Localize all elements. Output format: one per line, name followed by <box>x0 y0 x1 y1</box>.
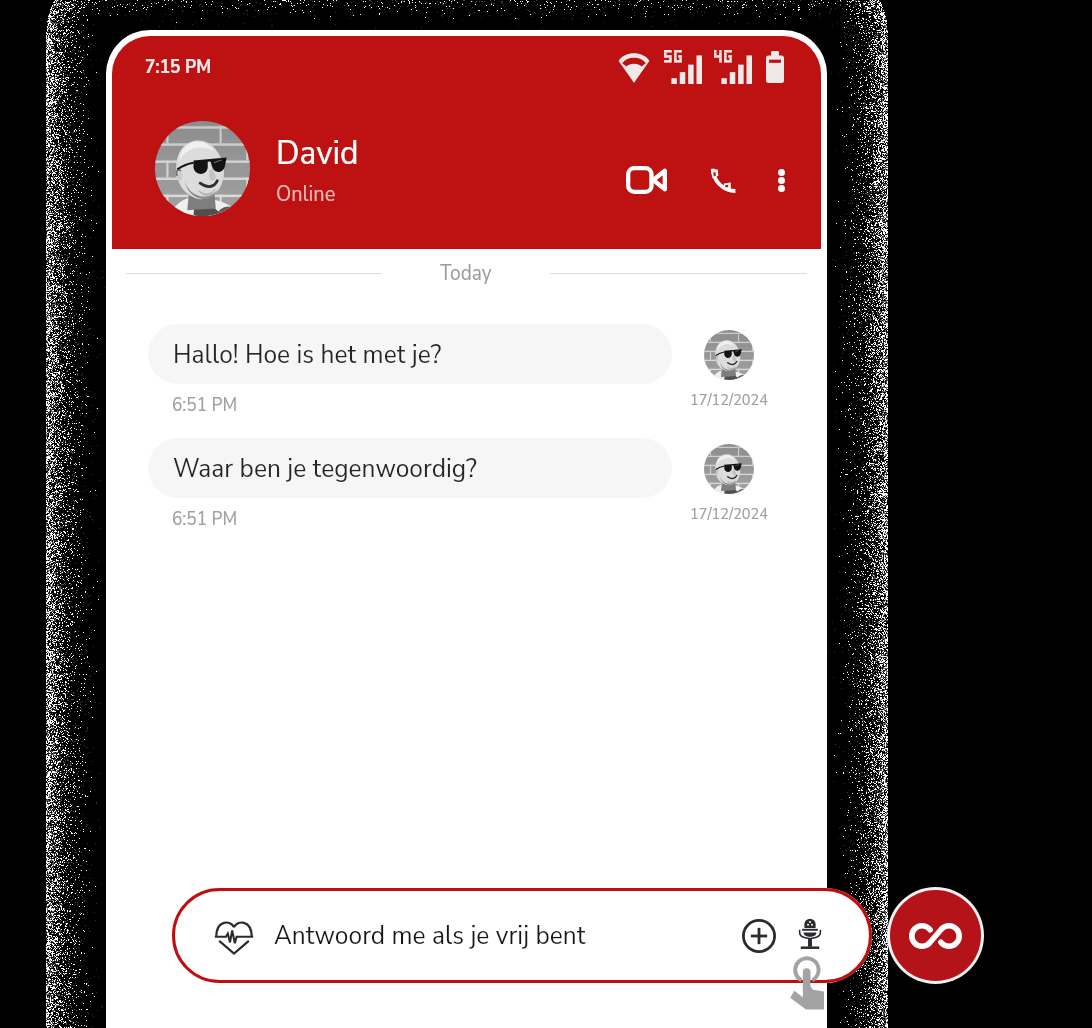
staticText: 7:15 PM <box>145 54 212 80</box>
button[interactable]: Hallo! Hoe is het met je? <box>148 324 672 384</box>
button[interactable]: Waar ben je tegenwoordig? <box>148 438 672 498</box>
staticText: 6:51 PM <box>172 506 238 532</box>
button[interactable]: More options <box>768 167 794 193</box>
staticText: 17/12/2024 <box>690 503 768 525</box>
button[interactable]: Record voice message <box>790 916 830 956</box>
staticText: Online <box>276 179 336 209</box>
staticText: Hallo! Hoe is het met je? <box>173 336 442 373</box>
button[interactable] <box>172 888 872 983</box>
button[interactable]: Profile photo <box>155 121 250 216</box>
button[interactable]: Add attachment <box>739 916 779 956</box>
staticText: David <box>276 129 359 177</box>
button[interactable]: Assistant <box>890 890 981 981</box>
staticText: Today <box>440 259 492 288</box>
staticText: Antwoord me als je vrij bent <box>274 917 586 954</box>
button[interactable]: Video call <box>618 152 674 208</box>
staticText: 6:51 PM <box>172 392 238 418</box>
staticText: Waar ben je tegenwoordig? <box>173 450 477 487</box>
staticText: 17/12/2024 <box>690 389 768 411</box>
button[interactable]: Voice call <box>695 154 747 206</box>
